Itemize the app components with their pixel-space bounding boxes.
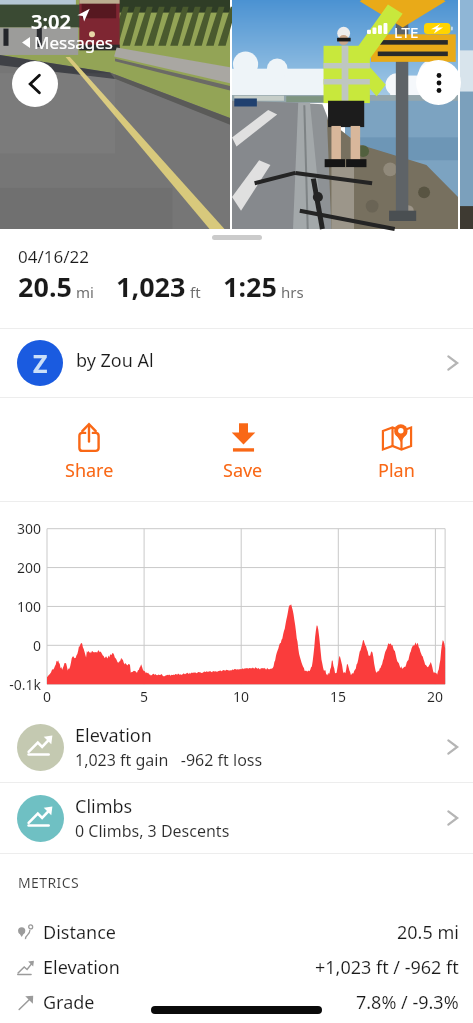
staticText: 1,023	[116, 268, 186, 305]
staticText: 0	[36, 687, 58, 706]
button[interactable]: Back	[12, 61, 58, 107]
button[interactable]: Z	[0, 329, 473, 397]
staticText: 100	[0, 597, 41, 616]
staticText: 3:02	[31, 8, 71, 35]
staticText: LTE	[394, 22, 419, 42]
staticText: ft	[190, 282, 201, 302]
staticText: Elevation	[75, 723, 152, 748]
staticText: hrs	[281, 282, 304, 302]
staticText: Grade	[43, 990, 95, 1015]
staticText: +1,023 ft / -962 ft	[315, 955, 459, 980]
staticText: -0.1k	[0, 675, 41, 694]
staticText: Distance	[43, 920, 116, 945]
staticText: Share	[65, 458, 114, 483]
staticText: 300	[0, 519, 41, 538]
staticText: by Zou Al	[76, 348, 154, 373]
staticText: 10	[230, 687, 252, 706]
staticText: 15	[327, 687, 349, 706]
staticText: 04/16/22	[18, 245, 89, 268]
staticText: 5	[133, 687, 155, 706]
button[interactable]: More options	[416, 60, 461, 105]
staticText: 1:25	[223, 268, 277, 305]
button[interactable]: Save	[166, 410, 320, 489]
staticText: 0 Climbs, 3 Descents	[75, 820, 230, 842]
staticText: 0	[0, 636, 41, 655]
staticText: Z	[33, 346, 48, 380]
button[interactable]: Plan	[320, 410, 473, 489]
button[interactable]: Elevation	[0, 712, 473, 782]
staticText: 1,023 ft gain -962 ft loss	[75, 749, 263, 771]
staticText: 20.5 mi	[397, 920, 459, 945]
staticText: Climbs	[75, 794, 133, 819]
staticText: Messages	[34, 31, 114, 54]
staticText: 200	[0, 558, 41, 577]
button[interactable]: Climbs	[0, 783, 473, 853]
staticText: Save	[223, 458, 263, 483]
button[interactable]: Share	[12, 410, 166, 489]
staticText: 20	[424, 687, 446, 706]
staticText: METRICS	[18, 873, 80, 892]
staticText: Plan	[378, 458, 415, 483]
staticText: 20.5	[18, 268, 72, 305]
staticText: Elevation	[43, 955, 120, 980]
staticText: 7.8% / -9.3%	[356, 990, 459, 1015]
staticText: mi	[76, 282, 94, 302]
